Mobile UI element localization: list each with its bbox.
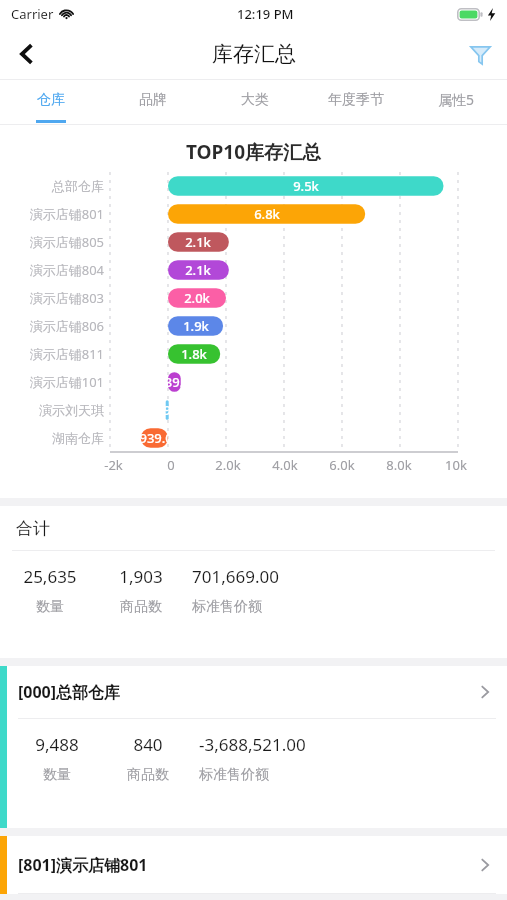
button[interactable]: 属性5 [406,80,507,125]
staticText: 439.0 [152,373,196,391]
staticText: 2.0k [215,456,241,474]
button[interactable]: Back [0,28,54,80]
staticText: 商品数 [120,598,162,616]
staticText: 大类 [241,91,269,109]
staticText: -2k [104,456,123,474]
staticText: 商品数 [127,766,169,784]
staticText: 演示店铺803 [29,289,104,307]
staticText: 标准售价额 [199,766,269,784]
staticText: 湖南仓库 [52,430,104,446]
staticText: 演示店铺101 [29,373,104,391]
staticText: 演示店铺811 [29,345,104,363]
staticText: 合计 [16,518,50,539]
staticText: [000]总部仓库 [18,681,121,703]
staticText: 标准售价额 [192,598,262,616]
staticText: -79.0 [145,401,189,419]
staticText: 演示刘天琪 [39,402,104,418]
staticText: Carrier [11,5,54,23]
staticText: 1.9k [174,317,218,335]
staticText: 演示店铺806 [29,317,104,335]
staticText: 2.1k [176,261,220,279]
button[interactable]: [000]总部仓库 [0,666,507,828]
staticText: 数量 [43,766,71,784]
staticText: 1,903 [119,565,163,588]
staticText: [801]演示店铺801 [18,854,148,876]
staticText: 4.0k [272,456,298,474]
staticText: 演示店铺804 [29,261,104,279]
staticText: 2.1k [176,233,220,251]
staticText: 6.0k [329,456,355,474]
staticText: 演示店铺805 [29,233,104,251]
staticText: 演示店铺801 [29,205,104,223]
staticText: 属性5 [438,90,475,109]
staticText: 年度季节 [328,91,384,109]
staticText: 0 [167,456,175,474]
button[interactable]: 仓库 [0,80,102,125]
staticText: -3,688,521.00 [199,733,306,756]
staticText: 1.8k [172,345,216,363]
staticText: 701,669.00 [192,565,279,588]
staticText: 840 [133,733,163,756]
staticText: 品牌 [139,91,167,109]
staticText: 8.0k [386,456,412,474]
staticText: 仓库 [37,91,65,109]
staticText: -939.0 [132,429,176,447]
button[interactable]: 大类 [204,80,305,125]
button[interactable]: 年度季节 [305,80,406,125]
staticText: 10k [445,456,467,474]
staticText: 2.0k [175,289,219,307]
button[interactable]: 品牌 [102,80,204,125]
button[interactable]: [801]演示店铺801 [0,836,507,894]
staticText: 9.5k [284,177,328,195]
button[interactable]: Filter [453,28,507,80]
staticText: 25,635 [23,565,77,588]
staticText: 库存汇总 [212,41,296,67]
staticText: 总部仓库 [52,178,104,194]
staticText: TOP10库存汇总 [0,139,507,165]
staticText: 数量 [36,598,64,616]
staticText: 9,488 [35,733,79,756]
staticText: 6.8k [245,205,289,223]
staticText: 12:19 PM [237,5,294,23]
